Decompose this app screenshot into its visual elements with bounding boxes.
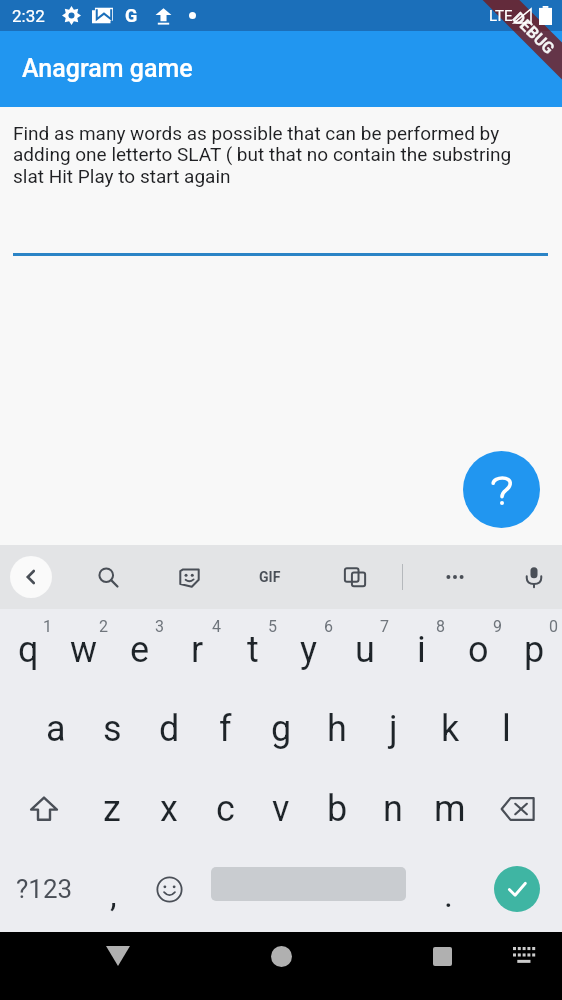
staticText: d [159, 708, 180, 750]
button[interactable]: GIF [249, 556, 291, 598]
staticText: LTE [489, 7, 513, 25]
staticText: l [502, 708, 511, 750]
staticText: 0 [549, 617, 558, 636]
button[interactable]: Back [94, 932, 142, 980]
button[interactable]: r [169, 609, 225, 689]
button[interactable]: k [422, 689, 478, 769]
button[interactable]: f [197, 689, 253, 769]
button[interactable]: m [422, 769, 478, 849]
staticText: ?123 [16, 874, 73, 904]
button[interactable]: u [337, 609, 393, 689]
staticText: e [130, 629, 150, 671]
staticText: t [247, 629, 259, 671]
button[interactable]: . [424, 849, 472, 929]
staticText: j [389, 708, 398, 750]
button[interactable]: q [0, 609, 56, 689]
staticText: s [103, 708, 122, 750]
button[interactable]: z [84, 769, 140, 849]
staticText: 4 [212, 617, 221, 636]
button[interactable]: o [450, 609, 506, 689]
staticText: GIF [259, 569, 281, 585]
button[interactable]: Help [463, 451, 540, 528]
staticText: 1 [43, 617, 52, 636]
staticText: G [125, 5, 138, 26]
staticText: g [271, 708, 292, 750]
button[interactable]: a [28, 689, 84, 769]
staticText: b [327, 788, 348, 830]
button[interactable]: c [197, 769, 253, 849]
staticText: a [46, 708, 66, 750]
staticText: k [441, 708, 460, 750]
button[interactable]: p [506, 609, 562, 689]
staticText: , [110, 875, 117, 915]
button[interactable]: w [56, 609, 112, 689]
button[interactable]: Back [10, 556, 52, 598]
button[interactable]: Search [87, 556, 129, 598]
button[interactable]: j [365, 689, 421, 769]
button[interactable]: d [141, 689, 197, 769]
staticText: v [272, 788, 290, 830]
button[interactable]: Shift [16, 769, 72, 849]
staticText: c [216, 788, 235, 830]
button[interactable]: g [253, 689, 309, 769]
button[interactable]: t [225, 609, 281, 689]
button[interactable]: Home [257, 932, 305, 980]
staticText: Find as many words as possible that can … [13, 122, 524, 188]
staticText: n [383, 788, 403, 830]
button[interactable]: Stickers [168, 556, 210, 598]
button[interactable]: Recents [418, 932, 466, 980]
staticText: 8 [436, 617, 445, 636]
button[interactable]: More options [434, 556, 476, 598]
button[interactable]: Backspace [490, 769, 546, 849]
button[interactable]: Emoji [146, 849, 192, 929]
staticText: . [444, 875, 453, 915]
button[interactable]: Enter [494, 866, 540, 912]
button[interactable]: , [88, 849, 138, 929]
button[interactable]: b [309, 769, 365, 849]
staticText: o [468, 629, 489, 671]
staticText: h [327, 708, 347, 750]
staticText: f [219, 708, 232, 750]
staticText: r [191, 629, 204, 671]
button[interactable]: s [84, 689, 140, 769]
staticText: u [355, 629, 375, 671]
button[interactable]: h [309, 689, 365, 769]
button[interactable]: e [112, 609, 168, 689]
button[interactable]: l [478, 689, 534, 769]
staticText: y [300, 629, 318, 671]
button[interactable]: v [253, 769, 309, 849]
staticText: p [524, 629, 545, 671]
button[interactable]: x [141, 769, 197, 849]
button[interactable]: ?123 [10, 849, 78, 929]
staticText: m [434, 788, 466, 830]
staticText: q [18, 629, 39, 671]
staticText: 9 [493, 617, 502, 636]
staticText: z [103, 788, 121, 830]
staticText: i [417, 629, 426, 671]
staticText: 7 [380, 617, 389, 636]
staticText: 3 [155, 617, 164, 636]
staticText: 2 [99, 617, 108, 636]
button[interactable]: Translate [334, 556, 376, 598]
staticText: 5 [268, 617, 277, 636]
staticText: DEBUG [509, 8, 559, 59]
button[interactable]: Voice input [513, 556, 555, 598]
staticText: x [160, 788, 178, 830]
button[interactable]: n [365, 769, 421, 849]
staticText: 2:32 [12, 6, 45, 26]
button[interactable]: i [393, 609, 449, 689]
staticText: 6 [324, 617, 333, 636]
staticText: w [70, 629, 98, 671]
button[interactable]: Switch keyboard [501, 932, 549, 980]
staticText: Anagram game [22, 54, 193, 83]
button[interactable]: y [281, 609, 337, 689]
